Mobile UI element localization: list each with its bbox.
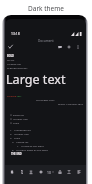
staticText: 1.: [10, 128, 13, 131]
staticText: ITALIC: [7, 58, 15, 61]
staticText: Numbered list: [14, 128, 31, 131]
staticText: 4.: [12, 140, 15, 143]
button[interactable]: Strikethrough: [37, 168, 45, 176]
staticText: UNDERLINE: [7, 62, 21, 65]
button[interactable]: Highlight: [65, 168, 73, 176]
staticText: Third: [13, 121, 20, 124]
staticText: 3.: [10, 136, 13, 139]
staticText: BOLD: [7, 54, 14, 57]
button[interactable]: Done: [7, 43, 14, 50]
staticText: Document: [38, 39, 54, 43]
staticText: Bullet list: [13, 113, 24, 116]
staticText: Another one: [13, 117, 28, 120]
button[interactable]: Text colour: [56, 168, 64, 176]
staticText: Nested list: [16, 140, 29, 143]
staticText: 13:18: [11, 31, 20, 36]
button[interactable]: Align: [75, 168, 83, 176]
staticText: 10: [47, 170, 51, 175]
staticText: As bad as you want: [21, 144, 44, 147]
button[interactable]: Add person: [65, 43, 72, 50]
staticText: Dark theme: [28, 4, 65, 13]
staticText: 2.: [10, 132, 13, 135]
staticText: STRIKETHROUGH: [7, 66, 28, 69]
staticText: Third: [14, 136, 21, 139]
button[interactable]: More options: [74, 43, 81, 50]
staticText: CENTERED TEXT: [36, 98, 55, 101]
staticText: 1.: [17, 144, 20, 147]
button[interactable]: Underline: [27, 168, 35, 176]
staticText: 5.: [12, 148, 15, 151]
button[interactable]: Text size: [47, 168, 54, 176]
staticText: As many levels as you want: [16, 148, 48, 151]
button[interactable]: Italic: [18, 168, 26, 176]
button[interactable]: Comment: [56, 43, 63, 50]
button[interactable]: Bold: [8, 168, 16, 176]
staticText: THE END: [11, 152, 22, 155]
staticText: Another one: [14, 132, 29, 135]
staticText: Large text: [6, 71, 66, 88]
staticText: RIGHT ALIGNED TEXT: [58, 102, 84, 105]
staticText: Colored text: [7, 94, 22, 97]
